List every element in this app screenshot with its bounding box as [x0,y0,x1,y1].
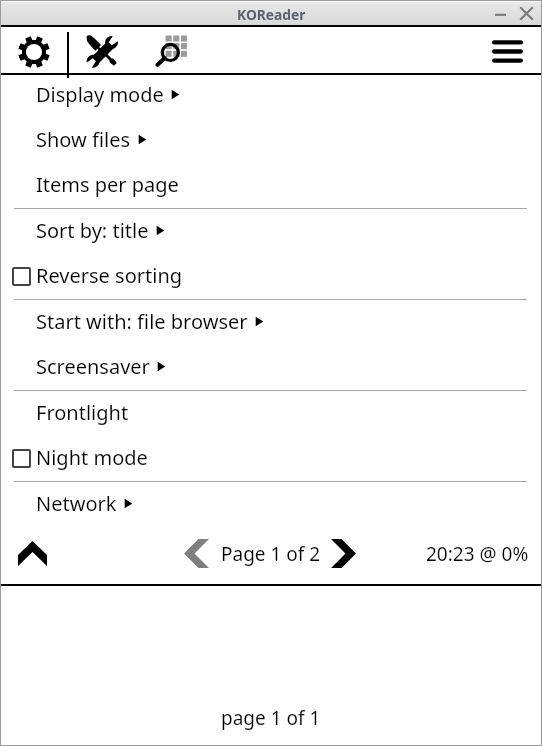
button[interactable]: Next page [323,531,365,577]
staticText: Items per page [36,171,179,198]
staticText: Display mode [36,81,164,108]
button[interactable]: Sort by: title [1,211,541,256]
button[interactable]: Network [1,484,541,529]
button[interactable]: Items per page [1,165,541,210]
staticText: page 1 of 1 [221,705,321,731]
button[interactable]: Settings [1,27,67,73]
button[interactable]: Minimize [489,2,511,24]
button[interactable]: Close [515,2,537,24]
button[interactable]: Tools [70,27,134,73]
staticText: Page 1 of 2 [221,541,321,567]
button[interactable]: Display mode [1,75,541,120]
staticText: 20:23 @ 0% [426,541,529,567]
staticText: Frontlight [36,399,129,426]
staticText: Sort by: title [36,217,149,244]
button[interactable]: Frontlight [1,393,541,438]
staticText: Show files [36,126,131,153]
staticText: Night mode [36,444,148,471]
staticText: Screensaver [36,353,150,380]
button[interactable]: Start with: file browser [1,302,541,347]
button[interactable]: Night mode [1,438,541,483]
staticText: Network [36,490,117,517]
staticText: Start with: file browser [36,308,248,335]
staticText: KOReader [237,5,306,24]
button[interactable]: Menu [479,27,541,73]
button[interactable]: Reverse sorting [1,256,541,301]
button[interactable]: Previous page [171,531,222,577]
button[interactable]: Up one level [1,529,65,584]
button[interactable]: Search [134,27,204,73]
staticText: Reverse sorting [36,262,183,289]
button[interactable]: Show files [1,120,541,165]
button[interactable]: Screensaver [1,347,541,392]
